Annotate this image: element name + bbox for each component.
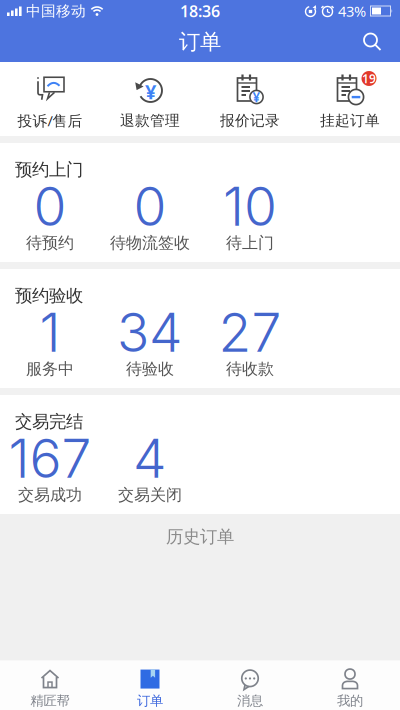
button[interactable]: 1: [0, 269, 100, 388]
staticText: 我的: [337, 693, 363, 709]
staticText: 订单: [179, 29, 221, 55]
staticText: 订单: [137, 693, 163, 709]
staticText: 待验收: [126, 359, 174, 379]
staticText: 0: [33, 174, 66, 238]
staticText: 历史订单: [166, 526, 234, 547]
button[interactable]: 34: [100, 269, 200, 388]
staticText: 交易关闭: [118, 485, 182, 505]
button[interactable]: 订单: [100, 661, 200, 710]
staticText: 34: [117, 300, 183, 364]
staticText: 挂起订单: [320, 111, 380, 129]
button[interactable]: 19: [300, 62, 400, 136]
button[interactable]: 10: [200, 143, 300, 262]
button[interactable]: ¥: [200, 62, 300, 136]
staticText: 投诉/售后: [17, 111, 82, 130]
button[interactable]: 我的: [300, 661, 400, 710]
button[interactable]: 0: [100, 143, 200, 262]
staticText: 预约上门: [15, 159, 83, 180]
staticText: 交易完结: [15, 411, 83, 432]
staticText: 待物流签收: [110, 233, 190, 253]
staticText: 43%: [338, 1, 366, 21]
staticText: 交易成功: [18, 485, 82, 505]
button[interactable]: 4: [100, 395, 200, 514]
staticText: 待预约: [26, 233, 74, 253]
staticText: 27: [218, 300, 281, 364]
staticText: 10: [223, 174, 277, 238]
staticText: 退款管理: [120, 111, 180, 129]
button[interactable]: 0: [0, 143, 100, 262]
staticText: 报价记录: [220, 111, 280, 129]
staticText: 待上门: [226, 233, 274, 253]
button[interactable]: ¥: [100, 62, 200, 136]
button[interactable]: 历史订单: [166, 514, 234, 547]
staticText: 167: [8, 426, 91, 490]
button[interactable]: 消息: [200, 661, 300, 710]
staticText: 消息: [237, 693, 263, 709]
staticText: 0: [133, 174, 166, 238]
button[interactable]: Search: [363, 32, 400, 51]
staticText: 18:36: [180, 0, 220, 22]
staticText: 待收款: [226, 359, 274, 379]
staticText: 19: [362, 70, 376, 86]
staticText: ¥: [252, 88, 260, 106]
button[interactable]: 精匠帮: [0, 661, 100, 710]
staticText: 预约验收: [15, 285, 83, 306]
button[interactable]: 167: [0, 395, 100, 514]
button[interactable]: 投诉/售后: [0, 62, 100, 136]
staticText: 精匠帮: [30, 693, 69, 709]
staticText: 中国移动: [26, 2, 86, 20]
staticText: 服务中: [26, 359, 74, 379]
staticText: 4: [133, 426, 167, 490]
button[interactable]: 27: [200, 269, 300, 388]
staticText: ¥: [145, 78, 156, 105]
staticText: 1: [39, 300, 60, 364]
